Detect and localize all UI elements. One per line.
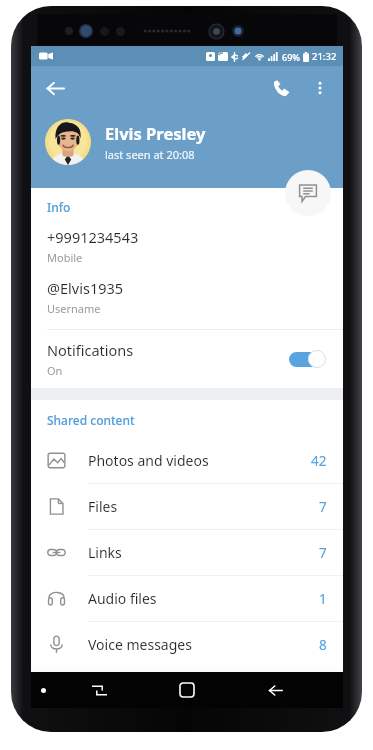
- button[interactable]: @Elvis1935: [31, 276, 343, 318]
- button[interactable]: Files: [31, 484, 343, 529]
- staticText: Photos and videos: [88, 451, 311, 470]
- staticText: 1: [319, 590, 327, 608]
- staticText: Links: [88, 543, 319, 562]
- staticText: Files: [88, 497, 319, 516]
- staticText: 7: [319, 544, 327, 562]
- staticText: Audio files: [88, 589, 319, 608]
- button[interactable]: More options: [301, 69, 339, 107]
- staticText: Shared content: [47, 412, 135, 428]
- staticText: 7: [319, 498, 327, 516]
- button[interactable]: Voice messages: [31, 622, 343, 667]
- staticText: 21:32: [312, 50, 337, 63]
- button[interactable]: Home: [170, 673, 204, 707]
- staticText: 69%: [282, 51, 300, 63]
- button[interactable]: Audio files: [31, 576, 343, 621]
- staticText: Mobile: [47, 250, 83, 265]
- button[interactable]: +9991234543: [31, 225, 343, 267]
- button[interactable]: Call: [261, 68, 301, 108]
- staticText: Username: [47, 301, 101, 316]
- staticText: Info: [47, 199, 71, 215]
- staticText: +9991234543: [47, 227, 139, 247]
- staticText: Voice messages: [88, 635, 319, 654]
- button[interactable]: Recents: [82, 673, 116, 707]
- button[interactable]: Notifications: [31, 330, 343, 388]
- staticText: @Elvis1935: [47, 278, 124, 298]
- staticText: last seen at 20:08: [105, 147, 195, 162]
- staticText: Notifications: [47, 340, 134, 360]
- button[interactable]: Send message: [285, 170, 331, 216]
- staticText: Elvis Presley: [105, 122, 206, 144]
- staticText: 42: [311, 452, 327, 470]
- button[interactable]: Links: [31, 530, 343, 575]
- staticText: On: [47, 363, 63, 378]
- button[interactable]: Back: [35, 68, 75, 108]
- button[interactable]: Back: [258, 673, 292, 707]
- button[interactable]: Photos and videos: [31, 438, 343, 483]
- staticText: 8: [319, 636, 327, 654]
